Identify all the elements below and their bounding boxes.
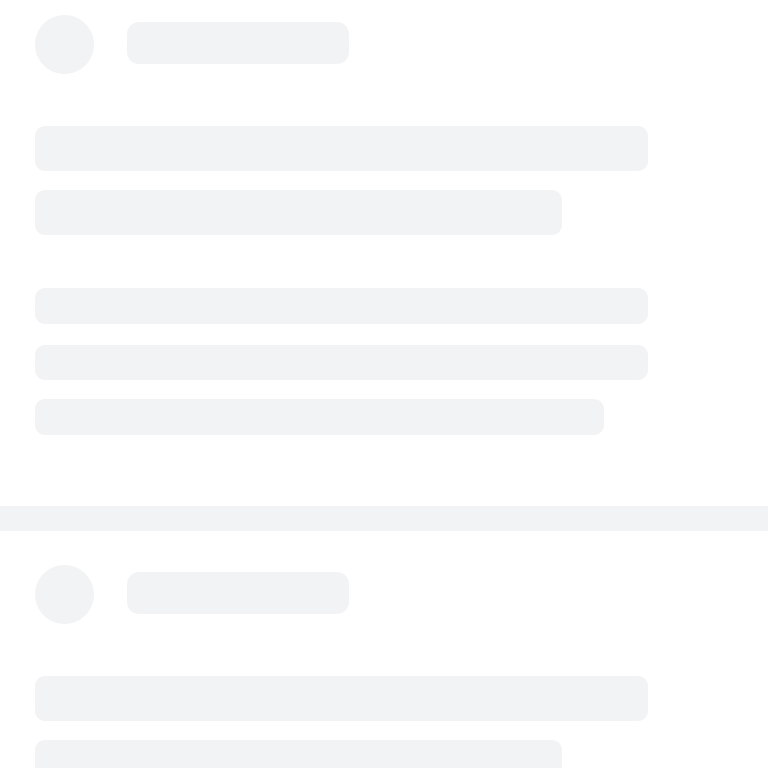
- button[interactable]: Loading content: [0, 15, 768, 435]
- button[interactable]: Loading content: [0, 565, 768, 768]
